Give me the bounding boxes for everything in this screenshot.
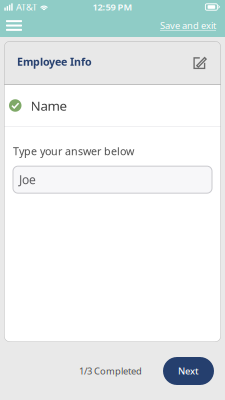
staticText: 1/3 Completed bbox=[79, 365, 142, 377]
staticText: Name bbox=[30, 97, 67, 114]
staticText: Next bbox=[178, 365, 199, 377]
button[interactable]: Joe bbox=[13, 166, 212, 193]
staticText: 12:59 PM bbox=[92, 1, 132, 13]
staticText: AT&T bbox=[16, 1, 37, 13]
button[interactable]: Edit bbox=[190, 52, 210, 74]
staticText: Employee Info bbox=[17, 54, 92, 69]
staticText: Save and exit bbox=[160, 19, 216, 32]
button[interactable]: Save and exit bbox=[157, 14, 219, 37]
button[interactable]: Menu bbox=[0, 14, 28, 37]
button[interactable]: Next bbox=[163, 357, 214, 385]
staticText: Joe bbox=[19, 172, 36, 188]
staticText: Type your answer below bbox=[13, 144, 134, 158]
